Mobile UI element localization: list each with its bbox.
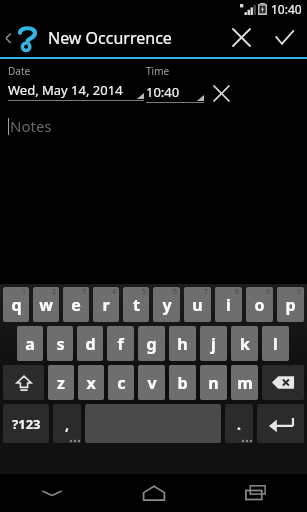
button[interactable]: g [138,326,165,361]
staticText: k [240,333,250,355]
button[interactable]: w [33,287,59,322]
button[interactable]: v [138,365,165,400]
button[interactable]: p [277,287,304,322]
staticText: h [177,333,188,355]
button[interactable]: q [3,287,29,322]
staticText: Time [146,64,170,78]
staticText: z [57,372,65,394]
staticText: l [273,333,278,355]
button[interactable]: Comma [53,404,81,443]
button[interactable]: Delete [262,365,304,400]
staticText: Notes [10,116,52,136]
button[interactable]: Home [103,474,205,512]
staticText: 3 [82,287,87,297]
button[interactable]: n [200,365,227,400]
staticText: f [117,333,124,355]
staticText: . [237,415,241,434]
button[interactable]: i [215,287,242,322]
button[interactable]: Recent apps [205,474,307,512]
button[interactable]: k [231,326,258,361]
staticText: 2 [52,287,57,297]
staticText: x [86,372,96,394]
button[interactable]: d [77,326,103,361]
staticText: 1 [22,287,27,297]
button[interactable]: f [107,326,134,361]
button[interactable]: Navigate up [0,25,40,51]
staticText: 10:40 [271,1,302,17]
button[interactable]: u [184,287,211,322]
button[interactable]: m [231,365,258,400]
staticText: v [147,372,157,394]
button[interactable]: x [78,365,104,400]
staticText: r [102,294,110,316]
staticText: o [254,294,265,316]
staticText: Date [8,64,31,78]
button[interactable]: Shift [3,365,44,400]
button[interactable]: s [47,326,73,361]
button[interactable]: Symbols [3,404,49,443]
button[interactable]: b [169,365,196,400]
staticText: 9 [266,287,271,297]
button[interactable]: e [63,287,89,322]
staticText: 6 [173,287,178,297]
staticText: 5 [142,287,147,297]
staticText: Wed, May 14, 2014 [8,81,123,99]
staticText: a [25,333,35,355]
button[interactable]: r [93,287,119,322]
button[interactable]: Clear time [206,81,236,105]
staticText: ?123 [12,415,41,433]
button[interactable]: Discard [221,18,261,57]
staticText: y [162,294,172,316]
staticText: 4 [112,287,117,297]
staticText: b [177,372,188,394]
staticText: 10:40 [146,83,180,101]
button[interactable]: l [262,326,289,361]
button[interactable]: Notes [0,113,307,139]
button[interactable]: z [48,365,74,400]
button[interactable]: Wed, May 14, 2014 [8,81,146,101]
staticText: n [208,372,219,394]
staticText: s [56,333,65,355]
staticText: i [226,294,231,316]
button[interactable]: a [17,326,43,361]
button[interactable]: Enter [257,404,304,443]
staticText: m [237,372,253,394]
staticText: t [133,294,140,316]
button[interactable]: y [153,287,180,322]
button[interactable]: Save [261,18,307,57]
staticText: c [117,372,126,394]
staticText: q [11,294,22,316]
staticText: g [146,333,157,355]
staticText: 7 [204,287,209,297]
button[interactable]: o [246,287,273,322]
button[interactable]: Hide keyboard [0,474,103,512]
staticText: j [211,333,216,355]
staticText: 8 [235,287,240,297]
button[interactable]: j [200,326,227,361]
button[interactable]: 10:40 [146,83,206,103]
staticText: p [285,294,296,316]
button[interactable]: Period [225,404,253,443]
staticText: e [71,294,81,316]
button[interactable]: c [108,365,134,400]
staticText: u [192,294,203,316]
staticText: 0 [297,287,302,297]
button[interactable]: h [169,326,196,361]
button[interactable]: t [123,287,149,322]
staticText: New Occurrence [48,27,172,49]
staticText: d [85,333,96,355]
staticText: , [65,415,69,434]
staticText: w [39,294,53,316]
